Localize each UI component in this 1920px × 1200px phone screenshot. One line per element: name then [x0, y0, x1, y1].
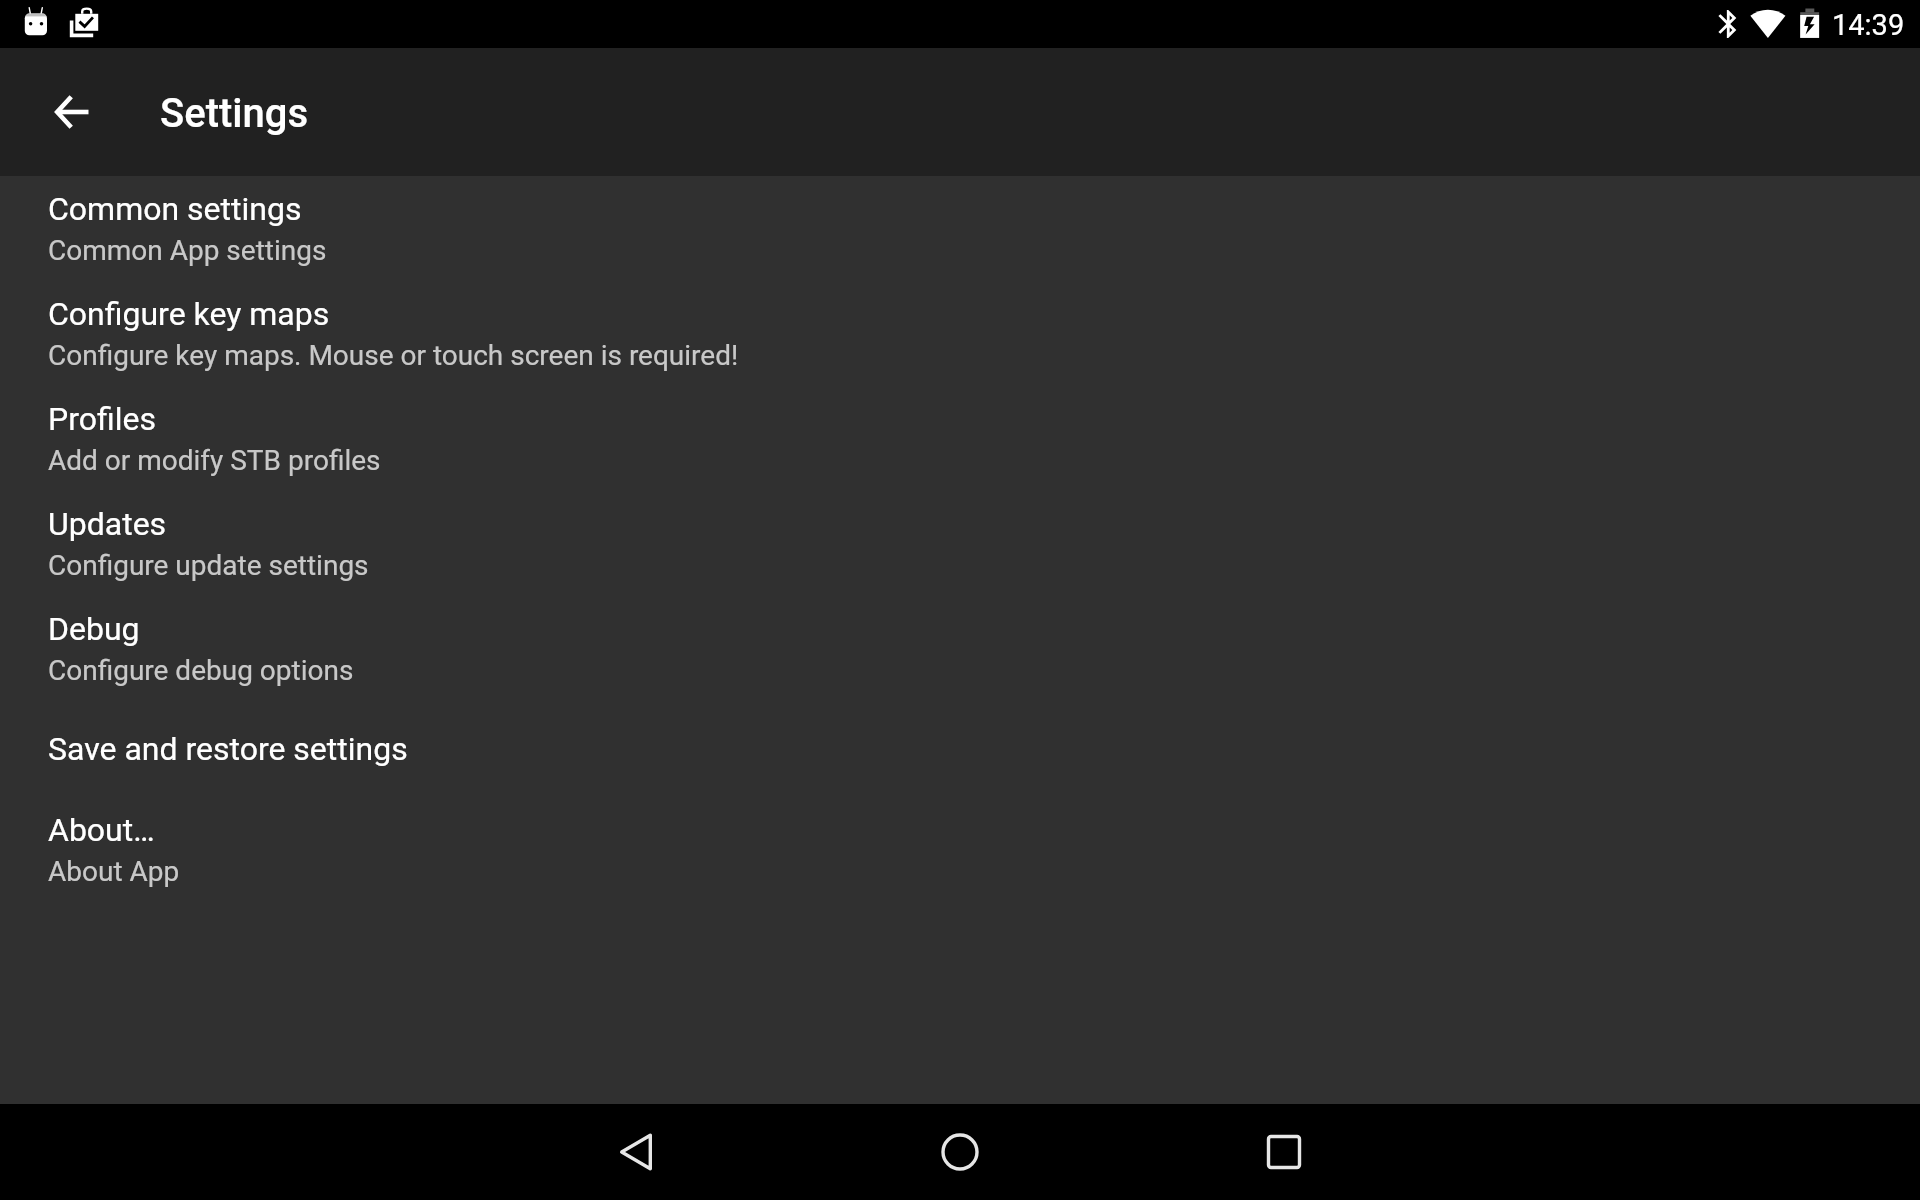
- button[interactable]: Configure key maps: [0, 281, 1920, 386]
- staticText: Configure update settings: [48, 549, 369, 582]
- staticText: Common settings: [48, 190, 302, 228]
- button[interactable]: Debug: [0, 596, 1920, 701]
- staticText: Configure key maps. Mouse or touch scree…: [48, 339, 739, 372]
- button[interactable]: About…: [0, 797, 1920, 902]
- staticText: Profiles: [48, 400, 156, 438]
- button[interactable]: Updates: [0, 491, 1920, 596]
- staticText: 14:39: [1832, 8, 1905, 42]
- staticText: Configure debug options: [48, 654, 354, 687]
- button[interactable]: Recent apps: [1236, 1104, 1332, 1200]
- staticText: Add or modify STB profiles: [48, 444, 381, 477]
- staticText: Configure key maps: [48, 295, 330, 333]
- staticText: Save and restore settings: [48, 730, 408, 768]
- button[interactable]: Back: [588, 1104, 684, 1200]
- staticText: Updates: [48, 505, 167, 543]
- button[interactable]: Save and restore settings: [0, 701, 1920, 797]
- staticText: Debug: [48, 610, 140, 648]
- button[interactable]: Common settings: [0, 176, 1920, 281]
- staticText: About…: [48, 811, 155, 849]
- button[interactable]: Home: [912, 1104, 1008, 1200]
- button[interactable]: Navigate up: [40, 80, 104, 144]
- staticText: Common App settings: [48, 234, 327, 267]
- staticText: About App: [48, 855, 180, 888]
- staticText: Settings: [160, 90, 309, 137]
- button[interactable]: Profiles: [0, 386, 1920, 491]
